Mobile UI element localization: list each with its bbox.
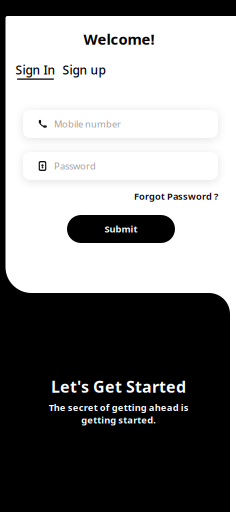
- staticText: Sign In: [15, 62, 55, 78]
- staticText: Sign up: [62, 62, 105, 78]
- staticText: Password: [54, 160, 96, 172]
- button[interactable]: Sign up: [62, 62, 105, 80]
- staticText: Welcome!: [83, 29, 154, 49]
- staticText: Submit: [104, 223, 137, 235]
- button[interactable]: Forgot Password ?: [134, 190, 218, 202]
- staticText: The secret of getting ahead is getting s…: [48, 401, 188, 426]
- staticText: Mobile number: [54, 118, 121, 130]
- staticText: Let's Get Started: [51, 376, 186, 397]
- button[interactable]: Sign In: [15, 62, 55, 80]
- button[interactable]: Submit: [67, 215, 175, 243]
- staticText: Forgot Password ?: [134, 190, 218, 202]
